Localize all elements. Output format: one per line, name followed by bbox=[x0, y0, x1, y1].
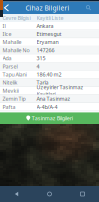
button[interactable]: Home bbox=[33, 186, 66, 202]
button[interactable]: Recents bbox=[66, 186, 99, 202]
staticText: A-4b/A-4 bbox=[36, 103, 57, 110]
staticText: Mahalle bbox=[2, 38, 21, 46]
staticText: Ana Tasinmaz bbox=[36, 95, 70, 102]
staticText: Mevkii bbox=[2, 87, 18, 94]
staticText: Pafta bbox=[2, 103, 15, 110]
staticText: 186.40 m2 bbox=[36, 71, 61, 78]
staticText: 4 bbox=[36, 63, 39, 70]
staticText: Uzeyirler Tasinmaz Kayitlari bbox=[36, 84, 83, 98]
staticText: Ada bbox=[2, 55, 11, 62]
staticText: Etimesgut bbox=[36, 30, 61, 37]
staticText: Cihaz Bilgileri bbox=[25, 3, 69, 12]
staticText: Tapu Alani bbox=[2, 71, 26, 78]
staticText: Tarla bbox=[36, 79, 48, 86]
staticText: Eryaman bbox=[36, 38, 58, 46]
staticText: Cevre Bilgisi bbox=[2, 14, 30, 22]
staticText: Ankara bbox=[36, 22, 53, 29]
staticText: Zemin Tip bbox=[2, 95, 25, 102]
button[interactable]: Tasinmaz Bilgileri bbox=[0, 112, 99, 124]
staticText: Nitelik bbox=[2, 79, 17, 86]
button[interactable]: Back bbox=[0, 186, 33, 202]
staticText: 315 bbox=[36, 55, 45, 62]
staticText: 147266 bbox=[36, 47, 54, 54]
staticText: Parsel bbox=[2, 63, 17, 70]
staticText: Tasinmaz Bilgileri bbox=[32, 115, 73, 122]
staticText: Mahalle No bbox=[2, 47, 29, 54]
button[interactable]: Search bbox=[82, 2, 95, 14]
staticText: Kayitli Liste bbox=[36, 14, 63, 22]
staticText: Il bbox=[2, 22, 5, 29]
staticText: Ilce bbox=[2, 30, 11, 37]
button[interactable]: Back bbox=[0, 2, 13, 14]
